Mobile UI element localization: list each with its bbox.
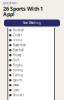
staticText: MMA <box>13 83 19 87</box>
staticText: Snooker <box>13 93 24 97</box>
button[interactable]: Golf <box>7 58 55 63</box>
button[interactable]: Football <box>7 28 55 33</box>
button[interactable]: Darts <box>7 88 55 93</box>
button[interactable]: MMA <box>7 83 55 88</box>
staticText: Baseball <box>13 48 24 52</box>
button[interactable]: Tennis <box>7 38 55 43</box>
staticText: Rugby <box>13 63 22 67</box>
staticText: Tennis <box>13 38 22 42</box>
button[interactable]: Start Watching <box>4 19 60 26</box>
staticText: App! <box>3 11 15 18</box>
button[interactable]: Cycling <box>7 73 55 78</box>
staticText: Basketball <box>13 43 26 47</box>
staticText: Hockey <box>13 53 21 57</box>
button[interactable]: Boxing <box>7 68 55 73</box>
button[interactable]: Basketball <box>7 43 55 48</box>
button[interactable]: Hockey <box>7 53 55 58</box>
button[interactable]: Cricket <box>7 33 55 38</box>
staticText: Esports <box>13 78 22 82</box>
staticText: LIVE SPORT <box>3 1 18 5</box>
button[interactable]: Rugby <box>7 63 55 68</box>
staticText: Start Watching <box>23 21 41 25</box>
button[interactable]: Baseball <box>7 48 55 53</box>
staticText: Football <box>13 28 24 32</box>
staticText: 26 Sports With 1 <box>3 5 43 12</box>
staticText: Cycling <box>13 73 23 77</box>
staticText: Darts <box>13 88 19 92</box>
button[interactable]: Snooker <box>7 93 55 98</box>
button[interactable]: Esports <box>7 78 55 83</box>
staticText: Boxing <box>13 68 23 72</box>
staticText: Cricket <box>13 33 22 37</box>
staticText: Golf <box>13 58 19 62</box>
